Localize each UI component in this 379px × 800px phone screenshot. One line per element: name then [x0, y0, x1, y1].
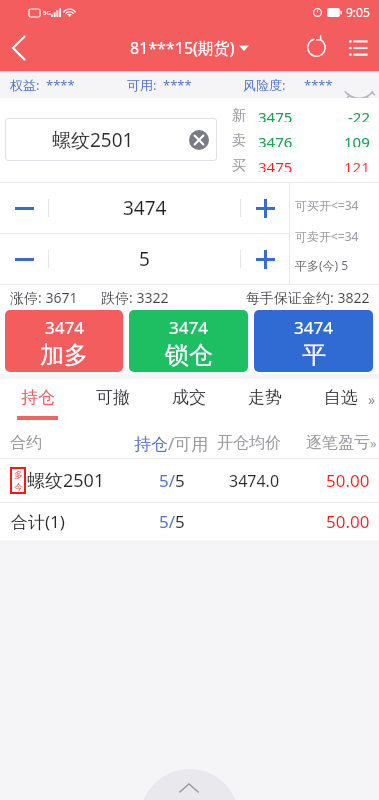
- staticText: 多: [14, 469, 23, 480]
- staticText: ****: [46, 76, 75, 94]
- staticText: 3475: [258, 107, 293, 122]
- staticText: 3474: [123, 195, 167, 221]
- button[interactable]: 5: [49, 234, 240, 284]
- staticText: ****: [163, 76, 192, 94]
- staticText: 5: [139, 246, 150, 272]
- staticText: 3474.0: [229, 470, 280, 492]
- staticText: 新: [232, 107, 246, 122]
- staticText: 可买开<=34: [295, 197, 359, 213]
- staticText: 今: [14, 481, 23, 492]
- staticText: 卖: [232, 132, 246, 147]
- staticText: 3476: [258, 132, 293, 147]
- staticText: »: [370, 434, 377, 452]
- button[interactable]: 81***15(期货): [126, 37, 253, 59]
- staticText: ****: [304, 76, 333, 94]
- button[interactable]: 成交: [151, 379, 227, 424]
- button[interactable]: 螺纹2501: [5, 118, 217, 161]
- staticText: 涨停: 3671: [10, 288, 78, 307]
- button[interactable]: 多: [0, 459, 379, 502]
- button[interactable]: 自选: [303, 379, 379, 424]
- staticText: 3474: [45, 316, 84, 339]
- staticText: 开仓均价: [217, 433, 281, 453]
- staticText: -22: [348, 107, 370, 122]
- button[interactable]: 3474: [49, 183, 240, 233]
- button[interactable]: 走势: [227, 379, 303, 424]
- staticText: 跌停: 3322: [101, 288, 169, 307]
- staticText: 合计(1): [11, 510, 65, 533]
- staticText: 平多(今) 5: [295, 257, 349, 273]
- button[interactable]: Clear: [189, 130, 209, 150]
- staticText: 50.00: [326, 469, 370, 492]
- staticText: 螺纹2501: [52, 127, 134, 153]
- button[interactable]: Increase: [241, 183, 289, 233]
- staticText: 3475: [258, 157, 293, 172]
- button[interactable]: 持仓: [0, 379, 75, 424]
- staticText: 风险度:: [243, 76, 286, 94]
- staticText: 50.00: [326, 510, 370, 533]
- staticText: 螺纹2501: [27, 468, 105, 493]
- staticText: 5G: [43, 9, 51, 17]
- staticText: 3474: [169, 316, 208, 339]
- staticText: 锁仓: [165, 340, 213, 370]
- button[interactable]: Back: [0, 24, 36, 71]
- staticText: 走势: [248, 387, 282, 408]
- staticText: 权益:: [10, 76, 40, 94]
- staticText: 109: [344, 132, 370, 147]
- button[interactable]: Order list: [337, 24, 379, 71]
- button[interactable]: Refresh: [295, 24, 337, 71]
- staticText: 5/5: [159, 510, 185, 533]
- staticText: 可撤: [96, 387, 130, 408]
- button[interactable]: Toggle balance visibility: [345, 74, 373, 96]
- staticText: 合约: [10, 433, 42, 453]
- button[interactable]: Decrease: [0, 234, 48, 284]
- staticText: 成交: [172, 387, 206, 408]
- staticText: 81***15(期货): [130, 37, 235, 59]
- staticText: 买: [232, 157, 246, 172]
- staticText: 持仓: [21, 387, 55, 408]
- button[interactable]: 3474: [254, 310, 373, 372]
- staticText: 平: [302, 340, 326, 370]
- button[interactable]: 3474: [5, 310, 123, 372]
- button[interactable]: Expand panel: [140, 769, 239, 800]
- staticText: 9:05: [346, 4, 370, 20]
- staticText: 加多: [40, 340, 88, 370]
- staticText: 每手保证金约: 3822: [246, 288, 370, 307]
- staticText: 可卖开<=34: [295, 228, 359, 244]
- button[interactable]: Increase: [241, 234, 289, 284]
- staticText: 121: [344, 157, 370, 172]
- staticText: 3474: [294, 316, 333, 339]
- button[interactable]: Decrease: [0, 183, 48, 233]
- staticText: »: [368, 390, 376, 409]
- staticText: 5/5: [159, 469, 185, 492]
- button[interactable]: 3474: [129, 310, 248, 372]
- staticText: 持仓/可用: [134, 432, 209, 455]
- staticText: 逐笔盈亏: [306, 433, 370, 453]
- button[interactable]: 可撤: [75, 379, 151, 424]
- staticText: 可用:: [127, 76, 157, 94]
- staticText: 自选: [324, 387, 358, 408]
